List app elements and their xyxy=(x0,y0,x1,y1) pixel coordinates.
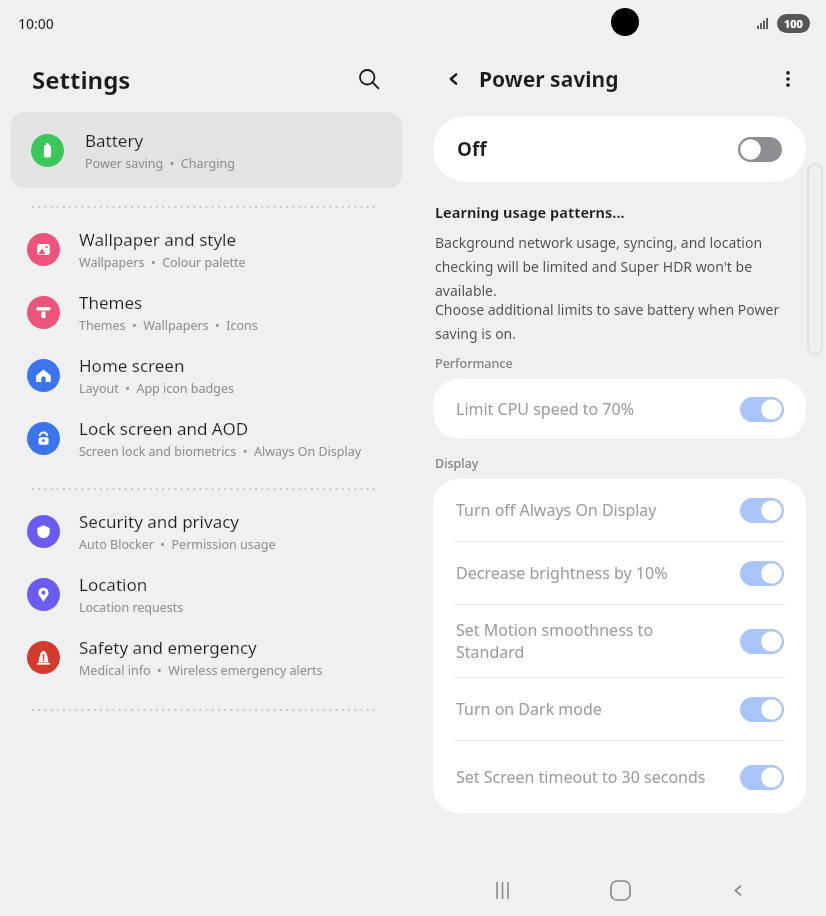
staticText: Safety and emergency xyxy=(79,636,257,659)
staticText: Learning usage patterns... xyxy=(435,202,625,222)
staticText: Background network usage, syncing, and l… xyxy=(435,233,804,300)
staticText: Set Motion smoothness to Standard xyxy=(456,619,724,663)
staticText: Battery xyxy=(85,129,144,152)
button[interactable]: Turn off Always On Display xyxy=(433,479,806,541)
staticText: Lock screen and AOD xyxy=(79,417,249,440)
button[interactable]: Turn on Dark mode xyxy=(433,678,806,740)
staticText: Themes • Wallpapers • Icons xyxy=(79,317,258,334)
staticText: Turn on Dark mode xyxy=(456,698,724,720)
button[interactable]: Toggle xyxy=(740,397,784,422)
button[interactable]: Home xyxy=(592,865,648,916)
button[interactable]: Home screen xyxy=(0,342,413,405)
button[interactable]: Battery xyxy=(11,112,402,188)
button[interactable]: More options xyxy=(768,59,808,99)
staticText: Security and privacy xyxy=(79,510,240,533)
button[interactable]: Toggle xyxy=(740,697,784,722)
button[interactable]: Toggle xyxy=(740,561,784,586)
button[interactable]: Themes xyxy=(0,279,413,342)
staticText: Screen lock and biometrics • Always On D… xyxy=(79,443,362,460)
staticText: Layout • App icon badges xyxy=(79,380,234,397)
button[interactable]: Back xyxy=(709,865,765,916)
button[interactable]: Off xyxy=(433,116,806,182)
button[interactable]: Limit CPU speed to 70% xyxy=(433,379,806,439)
staticText: Set Screen timeout to 30 seconds xyxy=(456,766,724,788)
staticText: Display xyxy=(435,455,479,472)
button[interactable]: Toggle xyxy=(740,498,784,523)
staticText: Wallpapers • Colour palette xyxy=(79,254,246,271)
staticText: Medical info • Wireless emergency alerts xyxy=(79,662,323,679)
staticText: Performance xyxy=(435,355,513,372)
staticText: Limit CPU speed to 70% xyxy=(456,398,724,420)
staticText: Power saving • Charging xyxy=(85,155,235,172)
button[interactable]: Toggle xyxy=(740,629,784,654)
button[interactable]: Back xyxy=(435,61,471,97)
staticText: Settings xyxy=(32,63,131,96)
staticText: Location requests xyxy=(79,599,184,616)
staticText: Off xyxy=(457,136,487,162)
staticText: Turn off Always On Display xyxy=(456,499,724,521)
staticText: Decrease brightness by 10% xyxy=(456,562,724,584)
staticText: Location xyxy=(79,573,148,596)
button[interactable]: Set Motion smoothness to Standard xyxy=(433,605,806,677)
button[interactable]: Safety and emergency xyxy=(0,624,413,687)
button[interactable]: Security and privacy xyxy=(0,490,413,561)
staticText: Choose additional limits to save battery… xyxy=(435,300,804,343)
staticText: Wallpaper and style xyxy=(79,228,237,251)
staticText: Home screen xyxy=(79,354,185,377)
staticText: 100 xyxy=(784,16,803,31)
button[interactable]: Location xyxy=(0,561,413,624)
button[interactable]: Decrease brightness by 10% xyxy=(433,542,806,604)
button[interactable]: Toggle xyxy=(738,137,782,162)
staticText: 10:00 xyxy=(18,14,54,33)
staticText: Auto Blocker • Permission usage xyxy=(79,536,276,553)
button[interactable]: Toggle xyxy=(740,765,784,790)
button[interactable]: Wallpaper and style xyxy=(0,208,413,279)
button[interactable]: Recents xyxy=(474,865,530,916)
button[interactable]: Set Screen timeout to 30 seconds xyxy=(433,741,806,813)
staticText: Power saving xyxy=(479,65,619,94)
button[interactable]: Search xyxy=(347,57,391,101)
button[interactable]: Lock screen and AOD xyxy=(0,405,413,468)
staticText: Themes xyxy=(79,291,143,314)
